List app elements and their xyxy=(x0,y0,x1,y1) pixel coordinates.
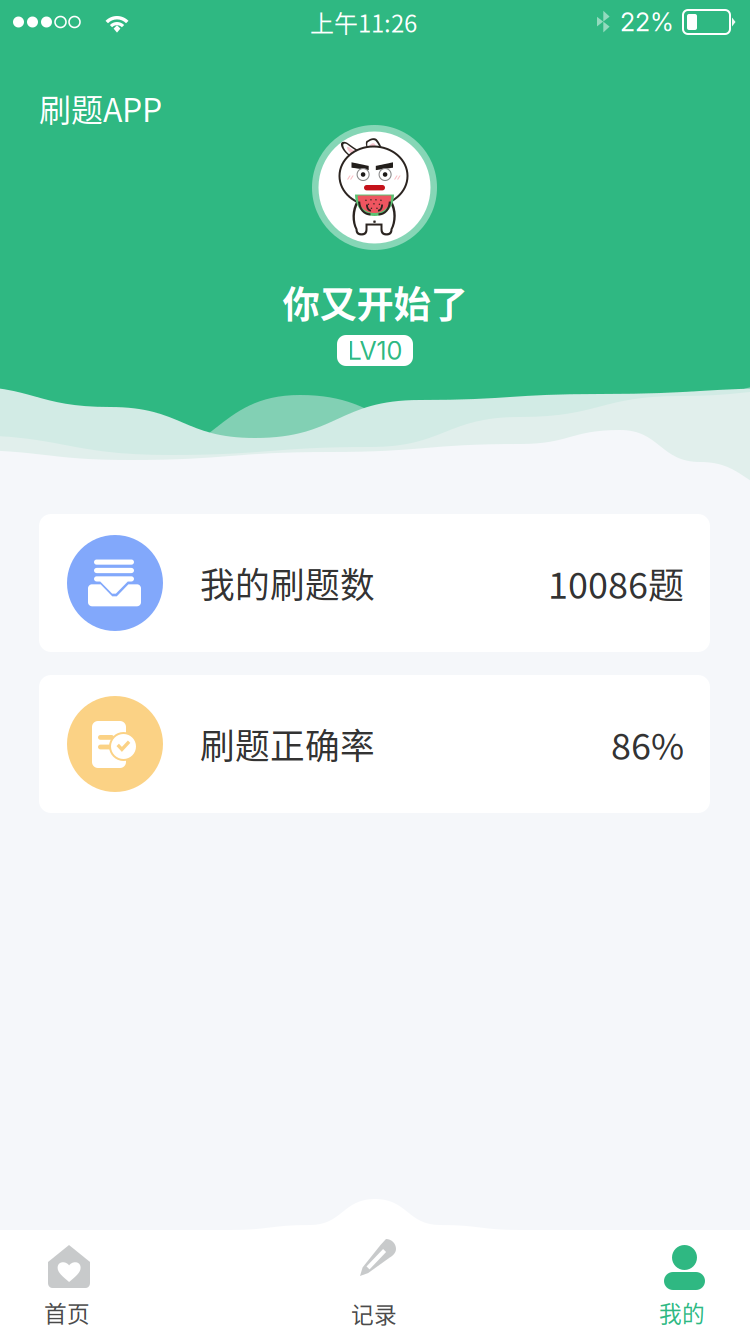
staticText: 记录 xyxy=(351,1297,397,1330)
button[interactable]: 我的刷题数 xyxy=(39,514,710,652)
staticText: 刷题正确率 xyxy=(200,719,375,769)
staticText: 我的刷题数 xyxy=(200,558,375,608)
staticText: 你又开始了 xyxy=(282,275,467,329)
staticText: 上午11:26 xyxy=(310,5,417,39)
button[interactable]: 首页 xyxy=(10,1245,160,1334)
staticText: 10086题 xyxy=(548,557,684,609)
staticText: 86% xyxy=(611,718,684,770)
button[interactable]: 记录 xyxy=(310,1239,460,1334)
staticText: 刷题APP xyxy=(39,85,162,131)
button[interactable]: 刷题正确率 xyxy=(39,675,710,813)
staticText: 首页 xyxy=(44,1296,90,1329)
staticText: 22% xyxy=(620,7,674,37)
button[interactable]: 我的 xyxy=(625,1245,750,1334)
staticText: LV10 xyxy=(347,335,402,366)
staticText: 我的 xyxy=(659,1296,705,1329)
